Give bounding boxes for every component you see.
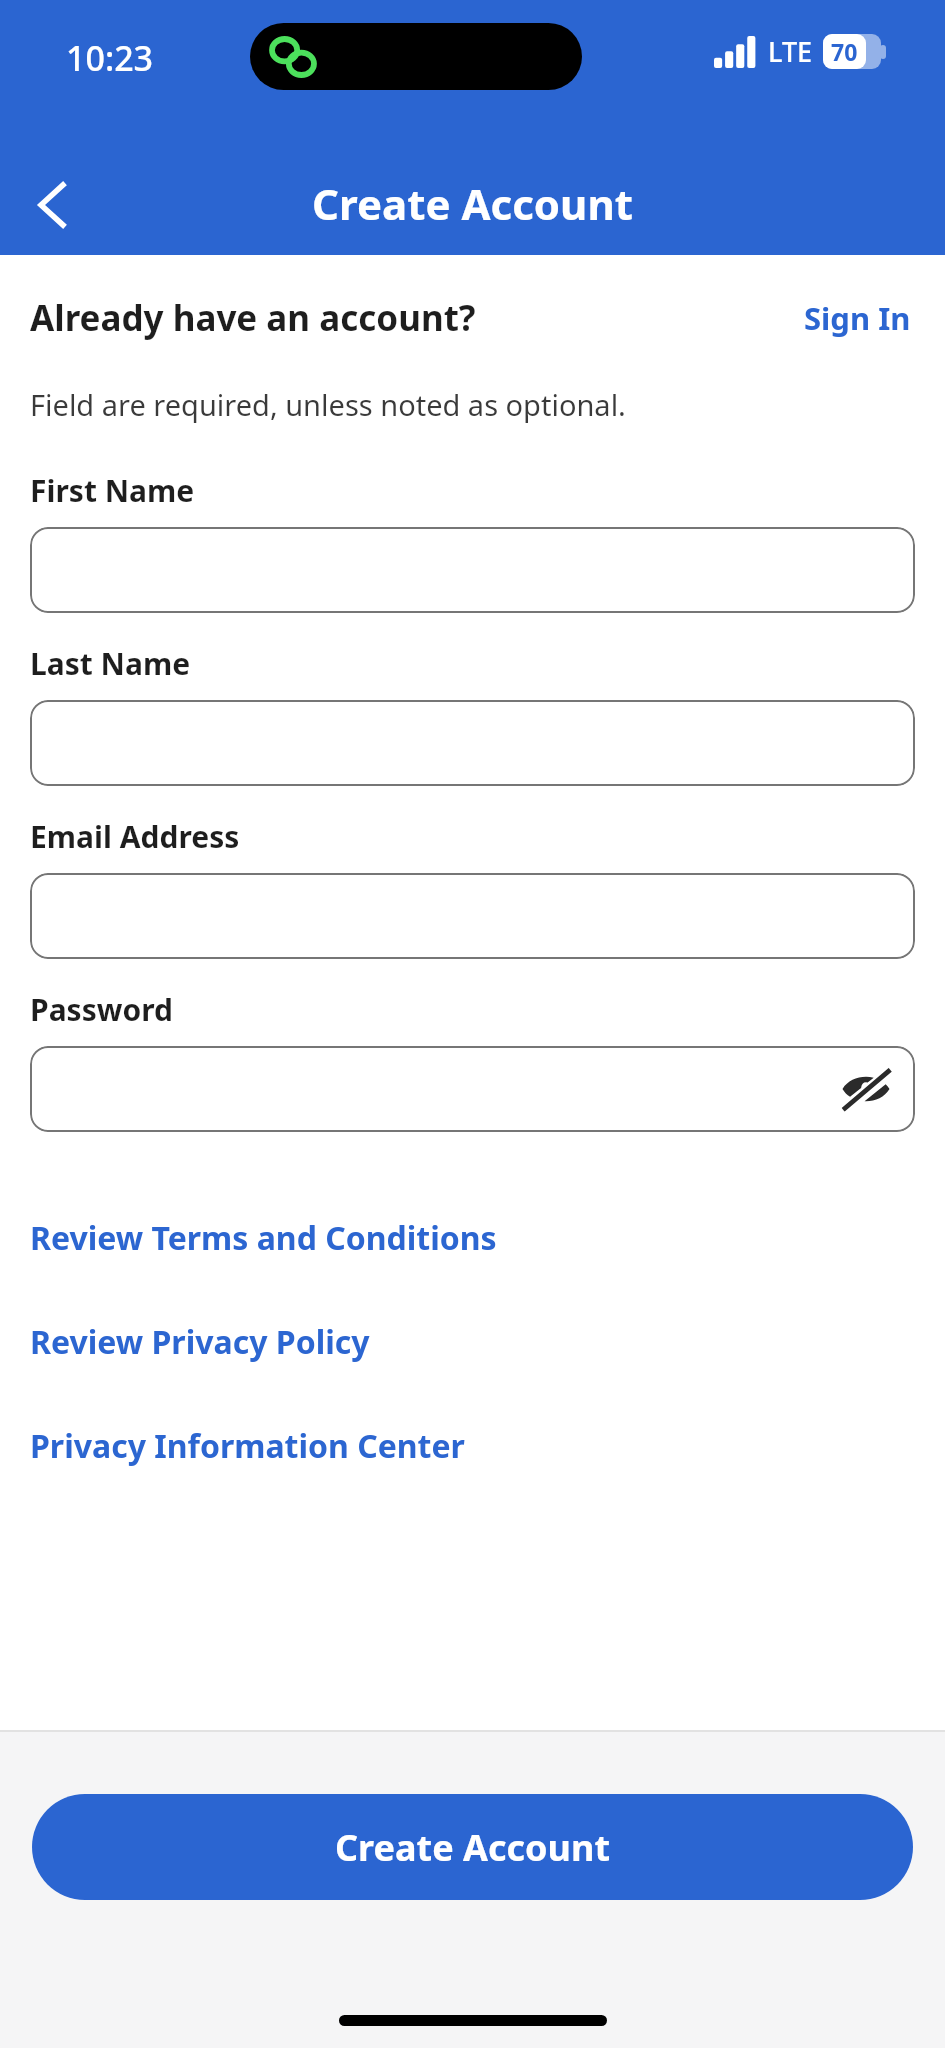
button[interactable]: Show password [835,1058,897,1120]
staticText: Field are required, unless noted as opti… [30,385,626,424]
button[interactable] [30,873,915,959]
button[interactable]: Sign In [800,293,915,343]
staticText: Create Account [312,175,633,232]
button[interactable] [30,527,915,613]
staticText: Review Terms and Conditions [30,1216,497,1260]
staticText: Review Privacy Policy [30,1320,370,1364]
staticText: Sign In [804,297,911,339]
staticText: Privacy Information Center [30,1424,465,1468]
staticText: 10:23 [66,35,154,81]
staticText: Last Name [30,643,191,684]
staticText: Password [30,989,173,1030]
button[interactable]: Create Account [32,1794,913,1900]
button[interactable]: Privacy Information Center [0,1418,945,1474]
button[interactable] [30,700,915,786]
button[interactable]: Review Privacy Policy [0,1314,945,1370]
staticText: LTE [768,33,813,70]
button[interactable]: Back [14,167,90,243]
staticText: Email Address [30,816,240,857]
staticText: First Name [30,470,195,511]
button[interactable]: Show password [30,1046,915,1132]
staticText: Already have an account? [30,294,476,342]
staticText: 70 [831,36,858,67]
staticText: Create Account [335,1823,611,1872]
button[interactable]: Review Terms and Conditions [0,1210,945,1266]
